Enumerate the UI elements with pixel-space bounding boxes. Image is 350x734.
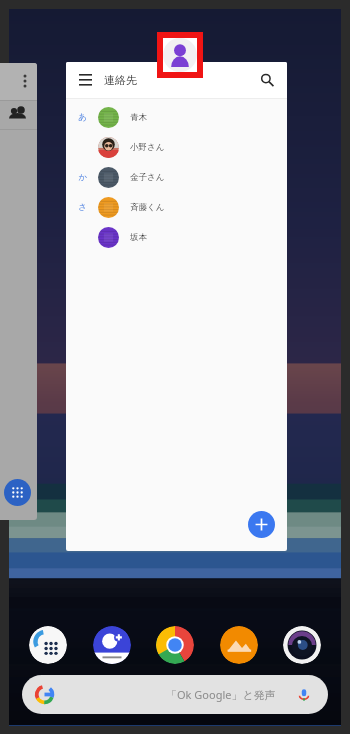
button[interactable]: さ bbox=[66, 192, 287, 222]
button[interactable]: Phone bbox=[29, 626, 67, 664]
button[interactable]: Photos bbox=[220, 626, 258, 664]
staticText: 坂本 bbox=[130, 232, 147, 243]
button[interactable]: Messages bbox=[93, 626, 131, 664]
staticText: か bbox=[78, 172, 87, 183]
button[interactable]: か bbox=[66, 162, 287, 192]
button[interactable]: Camera bbox=[283, 626, 321, 664]
staticText: あ bbox=[78, 112, 87, 123]
button[interactable]: 坂本 bbox=[66, 222, 287, 252]
button[interactable]: Search bbox=[256, 69, 278, 91]
button[interactable]: Profile avatar bbox=[163, 38, 197, 72]
button[interactable]: あ bbox=[66, 102, 287, 132]
button[interactable]: 小野さん bbox=[66, 132, 287, 162]
button[interactable]: Dial pad bbox=[4, 479, 31, 506]
staticText: 連絡先 bbox=[104, 73, 137, 87]
staticText: 金子さん bbox=[130, 172, 165, 183]
button[interactable]: Menu bbox=[74, 69, 96, 91]
button[interactable]: Dial pad bbox=[0, 63, 37, 520]
staticText: 小野さん bbox=[130, 142, 165, 153]
button[interactable]: Chrome bbox=[156, 626, 194, 664]
staticText: 青木 bbox=[130, 112, 147, 123]
staticText: 「Ok Google」と発声 bbox=[166, 687, 276, 702]
button[interactable]: Add contact bbox=[248, 511, 275, 538]
button[interactable]: Google search bbox=[22, 675, 328, 714]
staticText: さ bbox=[78, 202, 87, 213]
staticText: 斉藤くん bbox=[130, 202, 165, 213]
button[interactable]: Menu bbox=[66, 62, 287, 551]
